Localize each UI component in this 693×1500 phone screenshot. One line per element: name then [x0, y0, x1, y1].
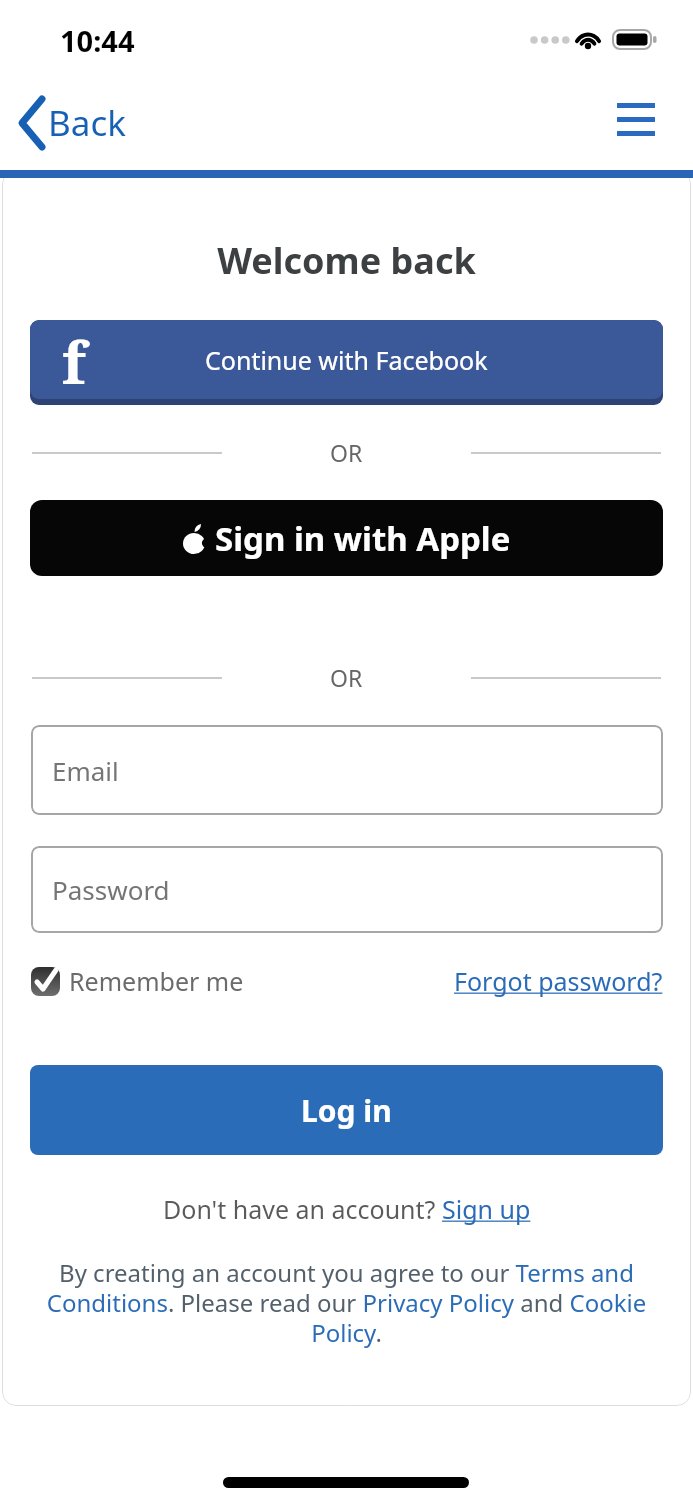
staticText: f: [62, 322, 86, 399]
staticText: Conditions. Please read our Privacy Poli…: [2, 1286, 691, 1319]
button[interactable]: Sign up: [442, 1192, 531, 1226]
staticText: Back: [48, 99, 126, 147]
staticText: Continue with Facebook: [205, 343, 488, 377]
staticText: Welcome back: [2, 236, 691, 285]
button[interactable]: Password: [31, 846, 663, 933]
staticText: Remember me: [69, 964, 244, 998]
staticText: By creating an account you agree to our …: [2, 1256, 691, 1289]
staticText: Sign in with Apple: [215, 516, 511, 561]
button[interactable]: Email: [31, 725, 663, 815]
staticText: Email: [52, 753, 119, 788]
button[interactable]: [31, 967, 60, 996]
button[interactable]: [617, 103, 655, 136]
staticText: Password: [52, 872, 170, 907]
staticText: Policy.: [2, 1316, 691, 1349]
button[interactable]: Back: [16, 96, 126, 150]
button[interactable]: Log in: [30, 1065, 663, 1155]
staticText: OR: [330, 662, 363, 693]
button[interactable]: Forgot password?: [454, 964, 663, 998]
staticText: Don't have an account?: [163, 1192, 442, 1226]
staticText: 10:44: [60, 21, 135, 60]
button[interactable]: Sign in with Apple: [30, 500, 663, 576]
button[interactable]: Continue with Facebook: [30, 320, 663, 405]
staticText: OR: [330, 437, 363, 468]
staticText: Log in: [301, 1090, 392, 1131]
